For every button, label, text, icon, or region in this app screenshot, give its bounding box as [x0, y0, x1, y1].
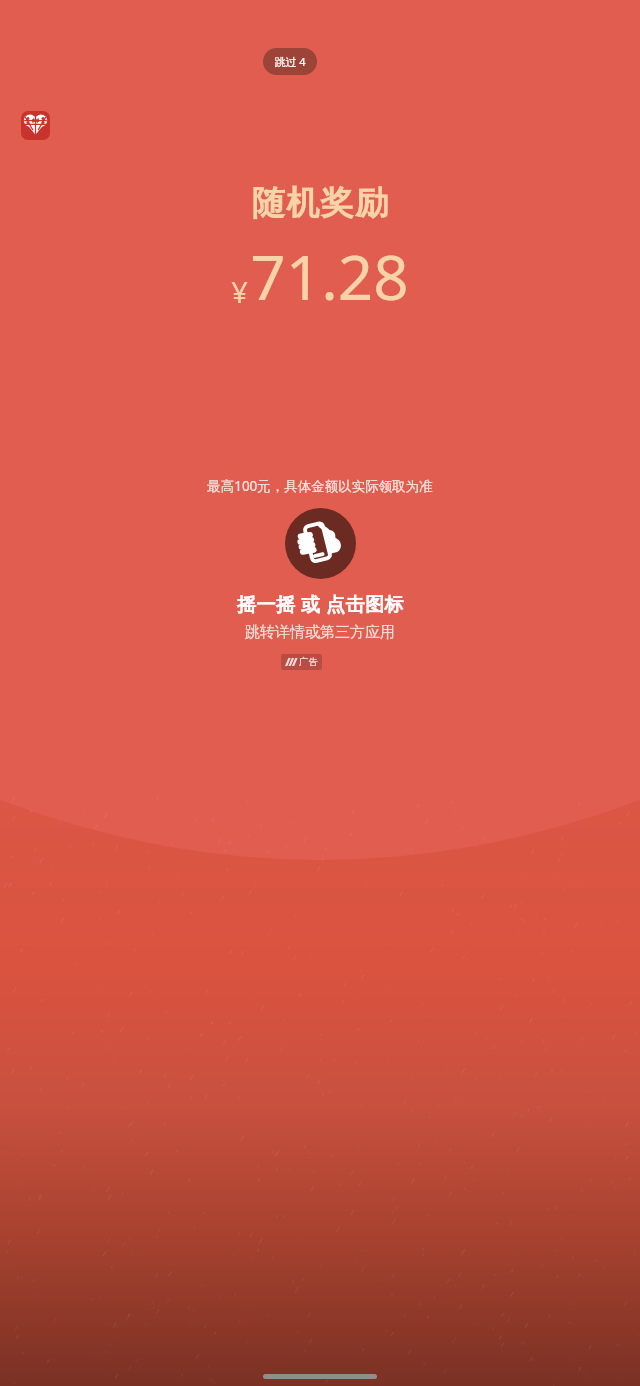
- staticText: 跳过 4: [274, 54, 306, 69]
- staticText: 广告: [299, 656, 318, 668]
- staticText: 跳转详情或第三方应用: [245, 623, 395, 642]
- staticText: ¥: [231, 272, 248, 311]
- button[interactable]: 广告: [281, 654, 322, 670]
- staticText: 71.28: [250, 234, 409, 318]
- staticText: 摇一摇 或 点击图标: [237, 591, 404, 617]
- button[interactable]: 跳过 4: [263, 48, 317, 75]
- button[interactable]: Shake or tap icon: [285, 508, 356, 579]
- staticText: 随机奖励: [251, 182, 389, 224]
- button[interactable]: App icon: [21, 111, 50, 140]
- staticText: 最高100元，具体金额以实际领取为准: [207, 477, 433, 495]
